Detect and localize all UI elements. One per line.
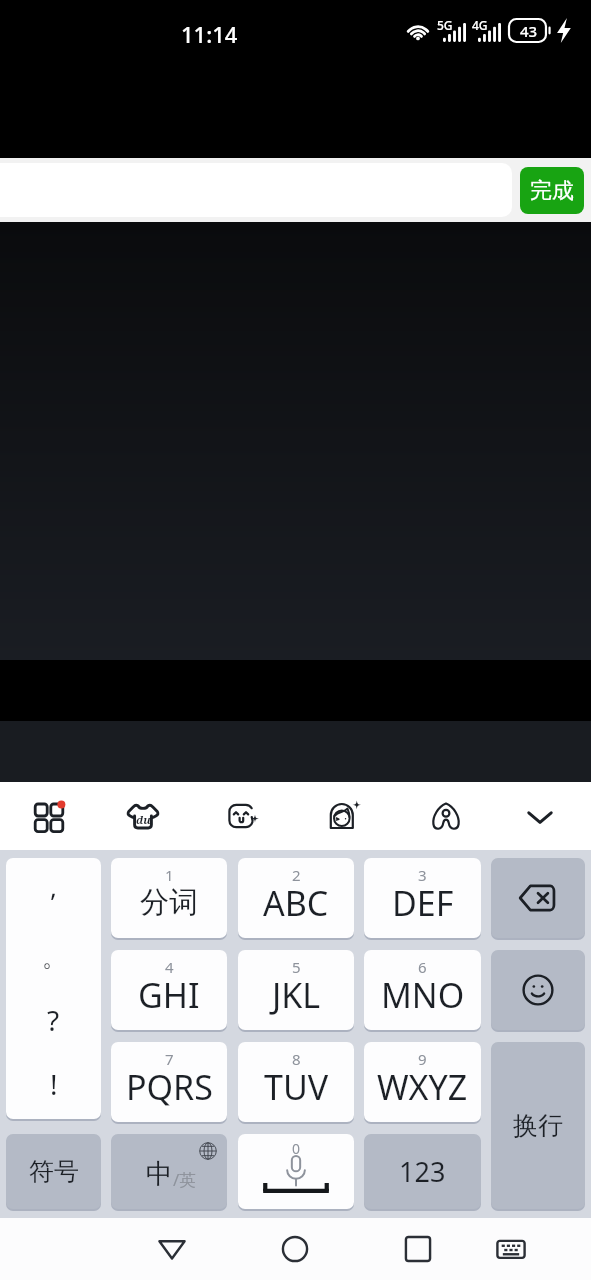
button[interactable]: 7 bbox=[111, 1042, 227, 1122]
button[interactable]: 1 bbox=[111, 858, 227, 938]
button[interactable]: Emoji bbox=[491, 950, 585, 1030]
other: Backspace bbox=[519, 884, 557, 912]
button[interactable]: Keyboard panels bbox=[16, 782, 84, 850]
staticText: 4G bbox=[472, 17, 488, 33]
staticText: /英 bbox=[173, 1168, 197, 1191]
staticText: 8 bbox=[292, 1049, 301, 1069]
other: Emoji bbox=[522, 974, 554, 1006]
button[interactable]: 换行 bbox=[491, 1042, 585, 1209]
staticText: 2 bbox=[292, 865, 301, 885]
staticText: TUV bbox=[264, 1064, 329, 1110]
staticText: 5 bbox=[292, 957, 301, 977]
button[interactable]: 123 bbox=[364, 1134, 481, 1209]
staticText: 。 bbox=[42, 943, 66, 973]
button[interactable]: Home bbox=[266, 1220, 324, 1278]
button[interactable]: 4 bbox=[111, 950, 227, 1030]
staticText: 123 bbox=[399, 1153, 446, 1190]
button[interactable]: 9 bbox=[364, 1042, 481, 1122]
button[interactable]: 3 bbox=[364, 858, 481, 938]
button[interactable]: 2 bbox=[238, 858, 354, 938]
button[interactable]: Hide keyboard bbox=[506, 782, 574, 850]
staticText: ABC bbox=[263, 880, 329, 926]
staticText: 3 bbox=[418, 865, 427, 885]
button[interactable]: Recents bbox=[389, 1220, 447, 1278]
staticText: WXYZ bbox=[377, 1064, 468, 1110]
button[interactable]: 6 bbox=[364, 950, 481, 1030]
button[interactable]: 完成 bbox=[520, 167, 584, 214]
button[interactable]: , bbox=[6, 858, 101, 1119]
staticText: 0 bbox=[292, 1139, 301, 1158]
button[interactable]: 符号 bbox=[6, 1134, 101, 1209]
staticText: MNO bbox=[381, 972, 465, 1018]
staticText: du bbox=[136, 812, 151, 827]
staticText: ? bbox=[47, 1001, 60, 1039]
staticText: , bbox=[50, 869, 57, 904]
staticText: 换行 bbox=[513, 1110, 563, 1141]
staticText: DEF bbox=[392, 880, 454, 926]
staticText: 6 bbox=[418, 957, 427, 977]
button[interactable]: Stickers bbox=[310, 782, 378, 850]
button[interactable]: 中 bbox=[111, 1134, 227, 1209]
button[interactable]: Profile bbox=[412, 782, 480, 850]
staticText: 1 bbox=[165, 865, 174, 885]
staticText: 5G bbox=[437, 17, 453, 33]
button[interactable]: 8 bbox=[238, 1042, 354, 1122]
staticText: 符号 bbox=[29, 1156, 79, 1187]
staticText: 11:14 bbox=[181, 19, 238, 49]
staticText: 中 bbox=[146, 1157, 173, 1191]
staticText: 7 bbox=[165, 1049, 174, 1069]
button[interactable]: Emoticons bbox=[209, 782, 277, 850]
staticText: ! bbox=[50, 1065, 58, 1103]
staticText: 分词 bbox=[140, 884, 198, 921]
staticText: PQRS bbox=[126, 1064, 213, 1110]
staticText: GHI bbox=[138, 972, 200, 1018]
button[interactable]: Skins bbox=[109, 782, 177, 850]
staticText: 4 bbox=[165, 957, 174, 977]
button[interactable]: Keyboard bbox=[482, 1220, 540, 1278]
button[interactable]: Back bbox=[143, 1220, 201, 1278]
staticText: 43 bbox=[520, 21, 538, 41]
staticText: JKL bbox=[272, 972, 321, 1018]
button[interactable]: 0 bbox=[238, 1134, 354, 1209]
staticText: 完成 bbox=[530, 177, 574, 205]
button[interactable]: Backspace bbox=[491, 858, 585, 938]
staticText: 9 bbox=[418, 1049, 427, 1069]
button[interactable]: 5 bbox=[238, 950, 354, 1030]
